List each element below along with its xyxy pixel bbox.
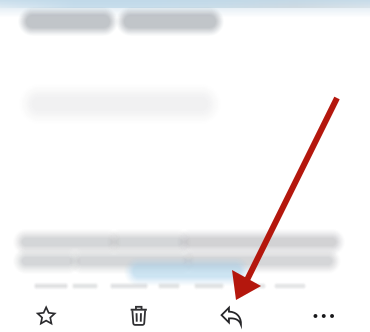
button[interactable]: Delete (92, 295, 185, 332)
button[interactable]: Reply (185, 295, 277, 332)
button[interactable]: Flag (0, 295, 92, 332)
button[interactable]: More (277, 295, 370, 332)
